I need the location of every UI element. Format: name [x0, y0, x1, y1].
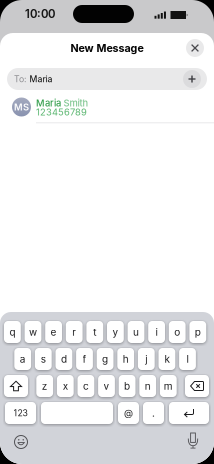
staticText: i: [156, 326, 158, 338]
staticText: o: [174, 326, 180, 338]
staticText: Smith: [63, 97, 88, 109]
staticText: h: [123, 353, 129, 365]
staticText: a: [20, 353, 26, 365]
staticText: 123456789: [36, 106, 87, 118]
staticText: f: [82, 353, 86, 365]
staticText: 123: [13, 408, 27, 418]
staticText: j: [145, 353, 147, 365]
staticText: b: [124, 380, 130, 392]
staticText: p: [195, 326, 201, 338]
staticText: c: [83, 380, 89, 392]
staticText: w: [29, 326, 37, 338]
staticText: To:: [14, 74, 26, 84]
staticText: k: [164, 353, 169, 365]
staticText: @: [124, 407, 133, 419]
staticText: q: [9, 326, 15, 338]
staticText: Maria: [36, 97, 61, 109]
staticText: l: [186, 353, 188, 365]
staticText: u: [133, 326, 139, 338]
staticText: MS: [14, 101, 29, 113]
staticText: New Message: [70, 41, 143, 54]
staticText: d: [61, 353, 67, 365]
staticText: Maria: [29, 74, 52, 84]
staticText: 10:00: [25, 7, 55, 21]
staticText: v: [103, 380, 109, 392]
staticText: s: [41, 353, 46, 365]
staticText: x: [63, 380, 68, 392]
staticText: e: [51, 326, 57, 338]
staticText: g: [102, 353, 108, 365]
staticText: y: [112, 326, 118, 338]
staticText: r: [72, 326, 76, 338]
staticText: t: [93, 326, 96, 338]
staticText: .: [152, 407, 155, 419]
staticText: z: [42, 380, 48, 392]
staticText: m: [164, 380, 173, 392]
staticText: n: [145, 380, 151, 392]
